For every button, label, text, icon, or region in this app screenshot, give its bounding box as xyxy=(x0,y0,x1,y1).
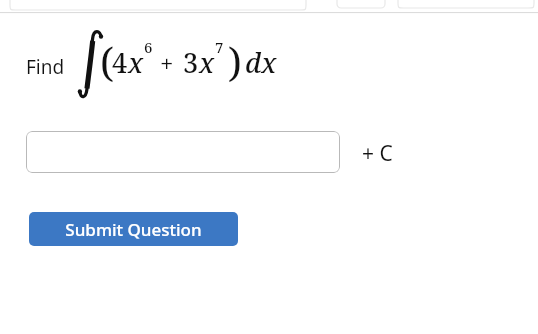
staticText: ) xyxy=(228,34,242,88)
button[interactable]: Answer input field xyxy=(26,131,340,173)
button[interactable]: Submit Question xyxy=(29,212,238,246)
staticText: 4 xyxy=(112,44,128,81)
staticText: + C xyxy=(362,139,393,168)
staticText: + xyxy=(160,46,174,79)
staticText: dx xyxy=(245,44,277,81)
staticText: Submit Question xyxy=(65,218,202,241)
staticText: 3 xyxy=(183,44,199,81)
staticText: x xyxy=(128,44,144,81)
staticText: 7 xyxy=(215,37,224,57)
staticText: 6 xyxy=(144,37,153,57)
staticText: Find xyxy=(26,54,65,80)
staticText: x xyxy=(199,44,215,81)
staticText: ( xyxy=(100,34,114,88)
